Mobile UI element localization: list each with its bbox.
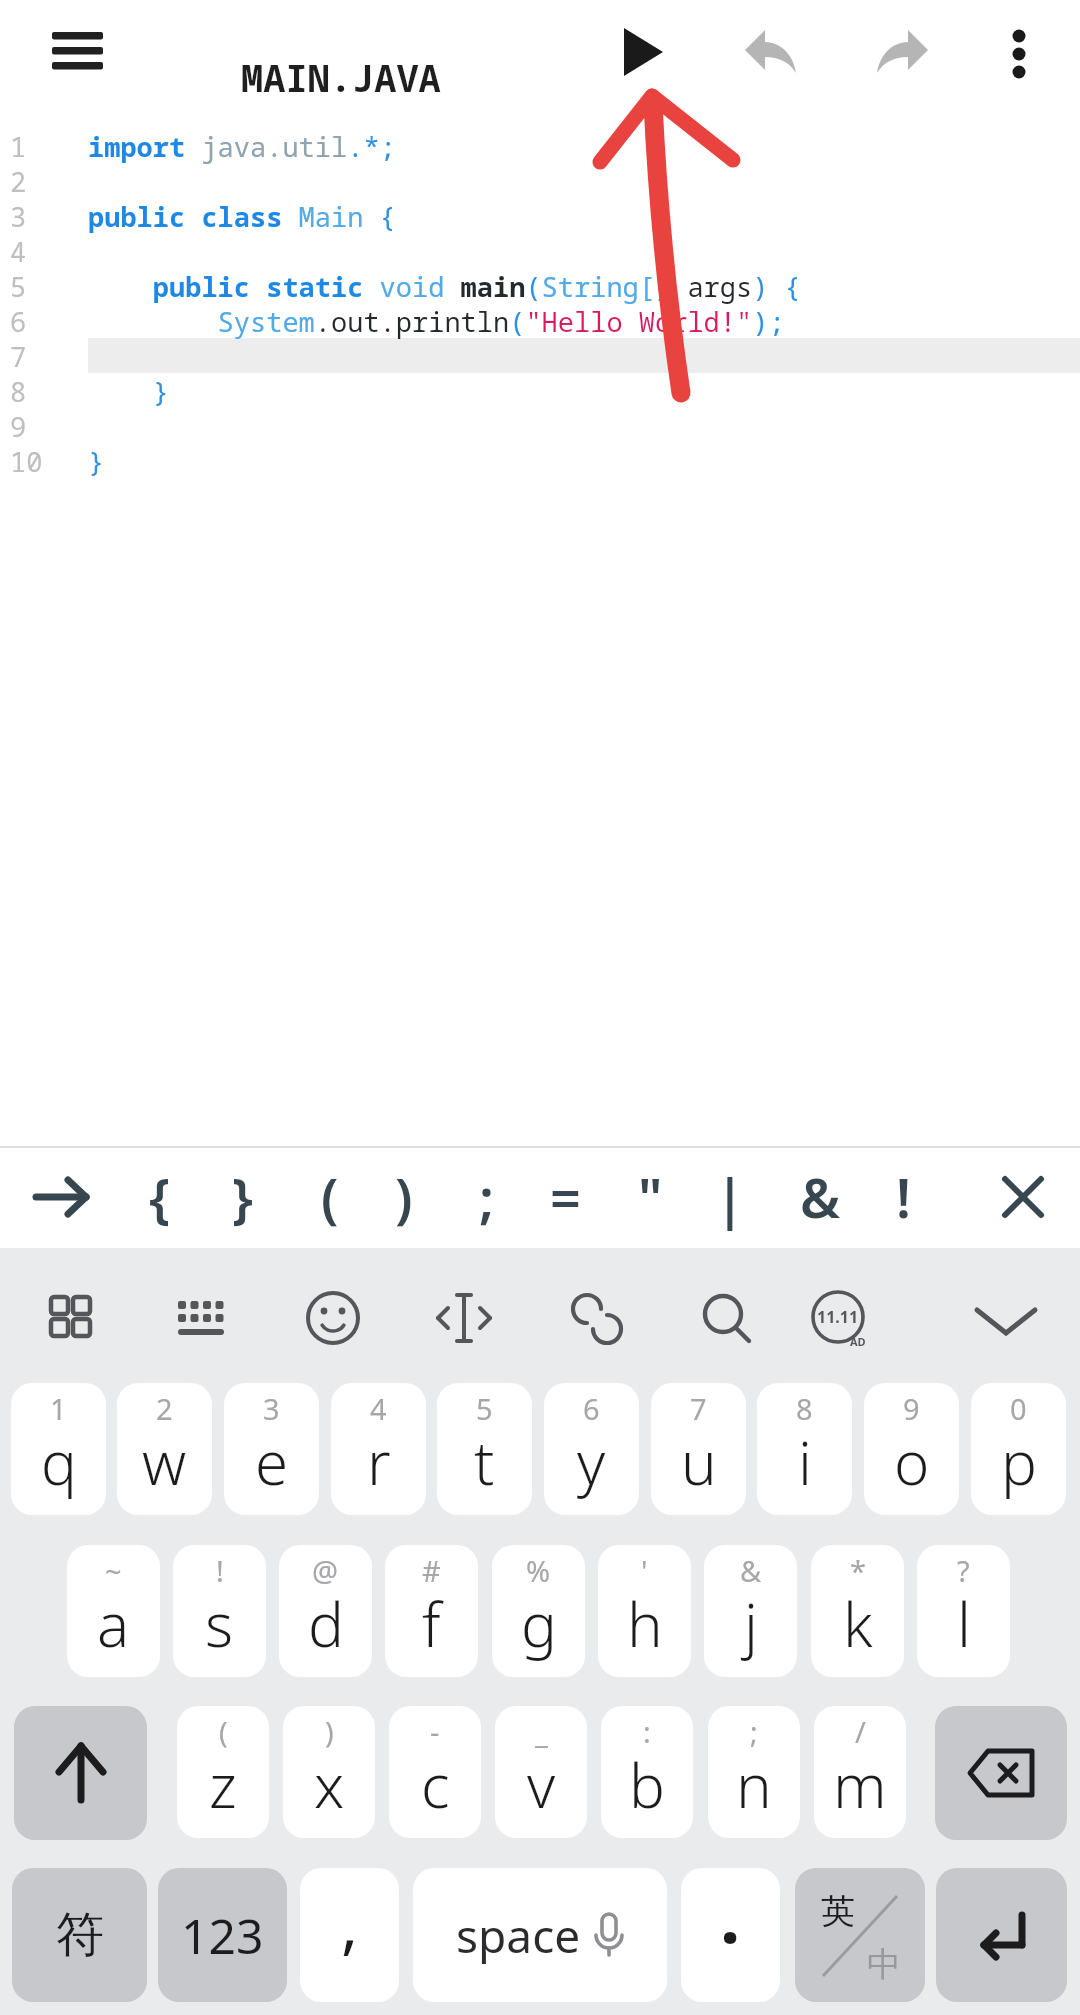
staticText: _ <box>535 1712 548 1751</box>
staticText: % <box>526 1551 551 1590</box>
staticText: 5 <box>10 268 27 305</box>
button[interactable]: & <box>785 1146 855 1248</box>
staticText: · <box>720 1886 741 1984</box>
button[interactable] <box>561 1283 633 1355</box>
staticText: a <box>97 1583 130 1665</box>
button[interactable]: ' <box>598 1545 691 1677</box>
button[interactable]: @ <box>279 1545 372 1677</box>
staticText: 中 <box>867 1943 901 1986</box>
staticText: * <box>850 1551 866 1590</box>
staticText: # <box>422 1551 441 1590</box>
button[interactable]: ) <box>283 1706 375 1838</box>
button[interactable]: 11.11 <box>802 1283 874 1355</box>
staticText: 9 <box>903 1389 920 1428</box>
button[interactable] <box>935 1706 1067 1840</box>
staticText: ? <box>957 1551 970 1590</box>
staticText: / <box>855 1712 866 1751</box>
button[interactable]: " <box>615 1146 685 1248</box>
staticText: 4 <box>370 1389 387 1428</box>
button[interactable]: ! <box>173 1545 266 1677</box>
button[interactable]: ! <box>868 1146 938 1248</box>
button[interactable]: % <box>492 1545 585 1677</box>
staticText: y <box>577 1421 606 1503</box>
button[interactable]: 符 <box>12 1868 147 2002</box>
staticText: , <box>341 1880 359 1967</box>
staticText: : <box>643 1712 651 1751</box>
button[interactable]: = <box>530 1146 600 1248</box>
button[interactable] <box>165 1283 237 1355</box>
button[interactable]: { <box>125 1146 195 1248</box>
button[interactable] <box>428 1283 500 1355</box>
button[interactable] <box>733 12 809 88</box>
staticText: 2 <box>10 163 27 200</box>
button[interactable]: 8 <box>757 1383 852 1515</box>
staticText: } <box>232 1160 254 1234</box>
button[interactable]: 6 <box>544 1383 639 1515</box>
button[interactable]: 英 <box>795 1868 925 2002</box>
button[interactable] <box>936 1868 1067 2002</box>
staticText: 6 <box>10 303 27 340</box>
staticText: System.out.println("Hello World!"); <box>88 303 785 340</box>
staticText: ( <box>321 1160 339 1234</box>
button[interactable] <box>604 10 684 95</box>
button[interactable]: _ <box>495 1706 587 1838</box>
button[interactable]: / <box>814 1706 906 1838</box>
staticText: 5 <box>476 1389 493 1428</box>
button[interactable] <box>970 1283 1042 1355</box>
button[interactable]: 3 <box>224 1383 319 1515</box>
button[interactable]: 7 <box>651 1383 746 1515</box>
staticText: ) <box>395 1160 413 1234</box>
button[interactable]: | <box>695 1146 765 1248</box>
staticText: ! <box>216 1551 224 1590</box>
button[interactable] <box>28 1172 98 1222</box>
button[interactable]: } <box>208 1146 278 1248</box>
button[interactable] <box>988 1172 1058 1222</box>
button[interactable]: - <box>389 1706 481 1838</box>
button[interactable] <box>14 1706 147 1840</box>
button[interactable] <box>691 1283 763 1355</box>
staticText: z <box>209 1744 237 1826</box>
button[interactable]: 0 <box>971 1383 1066 1515</box>
button[interactable]: # <box>385 1545 478 1677</box>
staticText: MAIN.JAVA <box>241 52 441 102</box>
staticText: f <box>422 1583 441 1665</box>
button[interactable]: * <box>811 1545 904 1677</box>
button[interactable]: ( <box>177 1706 269 1838</box>
staticText: @ <box>312 1551 339 1590</box>
button[interactable]: ( <box>295 1146 365 1248</box>
button[interactable]: : <box>601 1706 693 1838</box>
staticText: b <box>629 1744 665 1826</box>
button[interactable]: 9 <box>864 1383 959 1515</box>
staticText: 11.11 <box>817 1306 859 1328</box>
button[interactable] <box>864 12 940 88</box>
button[interactable]: 5 <box>437 1383 532 1515</box>
staticText: 10 <box>10 443 43 480</box>
staticText: g <box>521 1583 557 1665</box>
button[interactable] <box>989 12 1049 92</box>
button[interactable]: ? <box>917 1545 1010 1677</box>
button[interactable]: 2 <box>117 1383 212 1515</box>
staticText: n <box>736 1744 772 1826</box>
button[interactable]: 4 <box>331 1383 426 1515</box>
staticText: v <box>527 1744 556 1826</box>
button[interactable]: ; <box>708 1706 800 1838</box>
staticText: ! <box>896 1160 911 1234</box>
button[interactable]: · <box>681 1868 780 2002</box>
button[interactable] <box>35 1283 107 1355</box>
staticText: ; <box>479 1160 495 1234</box>
button[interactable] <box>297 1283 369 1355</box>
button[interactable]: & <box>704 1545 797 1677</box>
staticText: ~ <box>105 1551 122 1590</box>
button[interactable]: 123 <box>158 1868 287 2002</box>
staticText: j <box>744 1583 758 1665</box>
button[interactable] <box>36 16 116 86</box>
button[interactable]: space <box>413 1868 667 2002</box>
button[interactable]: 1 <box>11 1383 106 1515</box>
staticText: 8 <box>796 1389 813 1428</box>
staticText: w <box>142 1421 187 1503</box>
button[interactable]: ; <box>452 1146 522 1248</box>
staticText: 9 <box>10 408 27 445</box>
button[interactable]: ~ <box>67 1545 160 1677</box>
button[interactable]: ) <box>369 1146 439 1248</box>
button[interactable]: , <box>300 1868 399 2002</box>
